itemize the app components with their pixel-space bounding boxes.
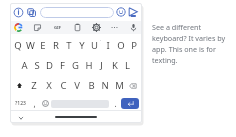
staticText: B xyxy=(88,79,95,92)
staticText: H xyxy=(85,59,93,72)
staticText: E xyxy=(40,39,46,52)
button[interactable]: Stickers xyxy=(33,23,42,32)
button[interactable]: A xyxy=(18,57,30,74)
staticText: G xyxy=(72,59,79,72)
staticText: M xyxy=(115,79,124,92)
staticText: L xyxy=(125,59,130,72)
button[interactable]: U xyxy=(88,37,101,54)
button[interactable]: Hide keyboard xyxy=(16,113,25,122)
staticText: GIF xyxy=(54,25,61,31)
button[interactable]: H xyxy=(82,57,95,74)
button[interactable]: Y xyxy=(75,37,88,54)
button[interactable]: T xyxy=(62,37,75,54)
button[interactable]: GIF xyxy=(51,23,63,32)
button[interactable]: ?123 xyxy=(13,97,28,110)
button[interactable]: More options xyxy=(110,23,119,32)
button[interactable]: P xyxy=(127,37,140,54)
button[interactable]: Q xyxy=(12,37,24,54)
button[interactable]: . xyxy=(109,97,121,110)
button[interactable]: W xyxy=(24,37,36,54)
button[interactable]: Shift xyxy=(13,77,26,94)
button[interactable]: Switch layout xyxy=(26,7,37,18)
button[interactable]: M xyxy=(112,77,126,94)
staticText: A xyxy=(21,59,28,72)
button[interactable]: Emoji xyxy=(40,97,51,110)
button[interactable] xyxy=(40,7,114,18)
button[interactable]: Emoji xyxy=(116,7,126,17)
staticText: J xyxy=(100,59,103,72)
staticText: Y xyxy=(79,39,85,52)
button[interactable]: F xyxy=(56,57,69,74)
staticText: K xyxy=(112,59,118,72)
staticText: F xyxy=(60,59,65,72)
button[interactable]: R xyxy=(49,37,62,54)
button[interactable]: Clipboard xyxy=(73,23,82,32)
button[interactable]: Z xyxy=(26,77,41,94)
staticText: N xyxy=(101,79,109,92)
staticText: , xyxy=(33,98,36,109)
staticText: V xyxy=(74,79,80,92)
button[interactable]: , xyxy=(28,97,40,110)
button[interactable]: Backspace xyxy=(126,77,139,94)
button[interactable]: Settings xyxy=(92,23,101,32)
button[interactable]: J xyxy=(95,57,108,74)
staticText: O xyxy=(117,39,125,52)
staticText: X xyxy=(46,79,52,92)
staticText: C xyxy=(60,79,67,92)
button[interactable]: Google search xyxy=(14,23,23,32)
staticText: S xyxy=(34,59,40,72)
button[interactable]: Enter xyxy=(121,98,139,109)
staticText: W xyxy=(26,39,35,52)
button[interactable]: N xyxy=(98,77,112,94)
staticText: Z xyxy=(31,79,37,92)
staticText: P xyxy=(131,39,137,52)
staticText: ?123 xyxy=(15,100,26,107)
button[interactable]: E xyxy=(36,37,49,54)
button[interactable]: Send GIF xyxy=(127,6,139,18)
staticText: D xyxy=(46,59,53,72)
button[interactable]: L xyxy=(121,57,134,74)
button[interactable]: X xyxy=(41,77,56,94)
staticText: R xyxy=(53,39,59,52)
button[interactable]: Voice input xyxy=(129,23,138,32)
button[interactable]: V xyxy=(70,77,84,94)
staticText: 7 xyxy=(100,39,101,45)
button[interactable]: C xyxy=(56,77,70,94)
button[interactable]: S xyxy=(30,57,43,74)
staticText: . xyxy=(114,98,117,109)
button[interactable]: Info xyxy=(13,7,24,18)
staticText: I xyxy=(106,39,110,52)
staticText: See a different keyboard? It varies by a… xyxy=(152,22,230,65)
button[interactable]: K xyxy=(108,57,121,74)
button[interactable]: I xyxy=(101,37,114,54)
button[interactable]: D xyxy=(43,57,56,74)
staticText: T xyxy=(66,39,72,52)
staticText: U xyxy=(91,39,98,52)
button[interactable]: B xyxy=(84,77,98,94)
button[interactable]: O xyxy=(114,37,127,54)
button[interactable]: G xyxy=(69,57,82,74)
staticText: Q xyxy=(14,39,22,52)
